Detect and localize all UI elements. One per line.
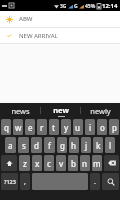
button[interactable]: f bbox=[44, 137, 55, 153]
button[interactable]: i bbox=[85, 119, 95, 135]
staticText: q bbox=[4, 122, 9, 133]
button[interactable]: x bbox=[32, 155, 42, 171]
staticText: g bbox=[60, 140, 65, 151]
button[interactable]: e bbox=[25, 119, 35, 135]
staticText: ?123 bbox=[4, 178, 16, 185]
button[interactable]: s bbox=[18, 137, 29, 153]
staticText: ABW bbox=[19, 15, 33, 23]
button[interactable]: b bbox=[68, 155, 78, 171]
staticText: w bbox=[15, 122, 22, 133]
button[interactable]: w bbox=[13, 119, 23, 135]
button[interactable]: Back bbox=[5, 15, 14, 24]
staticText: , bbox=[24, 177, 26, 187]
button[interactable]: a bbox=[5, 137, 16, 153]
button[interactable]: Comma bbox=[20, 173, 30, 190]
button[interactable]: u bbox=[73, 119, 83, 135]
button[interactable]: l bbox=[105, 137, 115, 153]
staticText: o bbox=[100, 122, 105, 133]
staticText: k bbox=[96, 140, 101, 151]
button[interactable]: z bbox=[19, 155, 30, 171]
button[interactable]: n bbox=[80, 155, 90, 171]
button[interactable]: c bbox=[44, 155, 54, 171]
button[interactable]: news bbox=[0, 103, 40, 118]
button[interactable]: v bbox=[56, 155, 66, 171]
button[interactable]: r bbox=[37, 119, 47, 135]
staticText: b bbox=[71, 158, 76, 169]
staticText: new bbox=[53, 105, 69, 115]
staticText: z bbox=[23, 158, 27, 169]
staticText: news bbox=[11, 106, 30, 116]
button[interactable]: Search bbox=[102, 173, 119, 190]
staticText: e bbox=[28, 122, 33, 133]
button[interactable]: NEW ARRIVAL bbox=[0, 28, 120, 43]
button[interactable]: j bbox=[81, 137, 91, 153]
button[interactable]: y bbox=[61, 119, 71, 135]
button[interactable]: k bbox=[93, 137, 103, 153]
staticText: r bbox=[40, 122, 44, 133]
staticText: 12:14 bbox=[102, 2, 118, 10]
staticText: i bbox=[89, 122, 92, 133]
button[interactable]: p bbox=[109, 119, 119, 135]
staticText: . bbox=[94, 177, 96, 187]
staticText: m bbox=[93, 158, 101, 169]
staticText: x bbox=[35, 158, 40, 169]
button[interactable]: new bbox=[41, 103, 80, 118]
button[interactable]: q bbox=[1, 119, 11, 135]
staticText: 45% bbox=[85, 3, 96, 10]
staticText: n bbox=[82, 158, 88, 169]
staticText: u bbox=[75, 122, 81, 133]
button[interactable]: h bbox=[69, 137, 79, 153]
button[interactable]: Period bbox=[90, 173, 100, 190]
staticText: d bbox=[34, 140, 39, 151]
staticText: newly bbox=[90, 106, 111, 116]
staticText: y bbox=[64, 122, 69, 133]
staticText: f bbox=[48, 140, 51, 151]
staticText: G bbox=[74, 3, 78, 10]
button[interactable]: o bbox=[97, 119, 107, 135]
staticText: l bbox=[109, 140, 112, 151]
staticText: v bbox=[59, 158, 64, 169]
button[interactable]: t bbox=[49, 119, 59, 135]
button[interactable]: Shift bbox=[1, 155, 17, 171]
staticText: a bbox=[8, 140, 13, 151]
button[interactable]: Back bbox=[0, 11, 120, 27]
staticText: c bbox=[47, 158, 51, 169]
button[interactable]: m bbox=[92, 155, 102, 171]
button[interactable]: ?123 bbox=[1, 173, 18, 190]
staticText: j bbox=[85, 140, 88, 151]
staticText: p bbox=[112, 122, 117, 133]
staticText: s bbox=[22, 140, 26, 151]
staticText: t bbox=[52, 122, 56, 133]
button[interactable]: Backspace bbox=[104, 155, 119, 171]
staticText: 3G bbox=[60, 3, 67, 10]
staticText: NEW ARRIVAL bbox=[19, 32, 58, 40]
staticText: h bbox=[71, 140, 77, 151]
button[interactable]: newly bbox=[81, 103, 120, 118]
button[interactable]: g bbox=[57, 137, 67, 153]
button[interactable]: d bbox=[31, 137, 42, 153]
